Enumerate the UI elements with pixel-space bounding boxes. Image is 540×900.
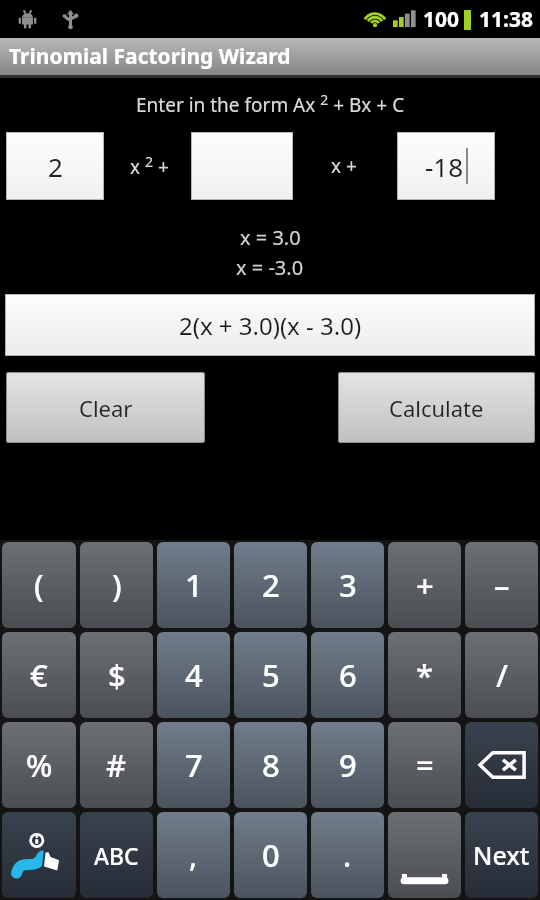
staticText: = — [416, 744, 434, 786]
staticText: 2 — [262, 564, 280, 606]
staticText: 7 — [185, 744, 203, 786]
staticText: / — [496, 654, 508, 696]
staticText: % — [26, 744, 53, 786]
button[interactable]: $ — [80, 632, 153, 718]
staticText: ABC — [94, 840, 139, 871]
button[interactable]: 6 — [311, 632, 384, 718]
staticText: $ — [108, 654, 126, 696]
button[interactable]: Space — [388, 812, 461, 898]
staticText: Trinomial Factoring Wizard — [9, 42, 291, 71]
staticText: x + — [331, 153, 357, 179]
staticText: ( — [34, 564, 44, 606]
staticText: + — [416, 564, 434, 606]
button[interactable]: . — [311, 812, 384, 898]
button[interactable]: Swipe input help — [2, 812, 76, 898]
staticText: . — [343, 835, 352, 876]
staticText: 4 — [185, 654, 203, 696]
button[interactable]: 5 — [234, 632, 307, 718]
button[interactable]: Next — [465, 812, 538, 898]
staticText: 5 — [262, 654, 280, 696]
staticText: Enter in the form Ax 2 + Bx + C — [136, 90, 405, 118]
staticText: 2(x + 3.0)(x - 3.0) — [179, 309, 362, 342]
button[interactable]: € — [2, 632, 76, 718]
button[interactable]: ABC — [80, 812, 153, 898]
staticText: € — [30, 654, 48, 696]
staticText: x = -3.0 — [236, 254, 304, 281]
staticText: 0 — [262, 834, 280, 876]
staticText: 11:38 — [479, 5, 533, 34]
button[interactable]: , — [157, 812, 230, 898]
button[interactable]: Delete — [465, 722, 538, 808]
staticText: 3 — [339, 564, 357, 606]
staticText: Next — [473, 838, 530, 872]
staticText: 8 — [262, 744, 280, 786]
button[interactable]: ) — [80, 542, 153, 628]
button[interactable]: % — [2, 722, 76, 808]
button[interactable]: ( — [2, 542, 76, 628]
staticText: 1 — [185, 564, 203, 606]
staticText: * — [416, 654, 433, 696]
button[interactable]: = — [388, 722, 461, 808]
button[interactable]: / — [465, 632, 538, 718]
button[interactable]: 2 — [234, 542, 307, 628]
staticText: x = 3.0 — [240, 224, 301, 251]
staticText: 9 — [339, 744, 357, 786]
button[interactable]: Clear — [6, 372, 205, 443]
staticText: x 2 + — [130, 152, 169, 180]
button[interactable]: 2 — [6, 132, 104, 200]
staticText: Clear — [79, 393, 133, 423]
button[interactable]: 8 — [234, 722, 307, 808]
button[interactable]: 3 — [311, 542, 384, 628]
button[interactable]: 7 — [157, 722, 230, 808]
staticText: 100 — [423, 5, 460, 34]
staticText: -18 — [425, 149, 464, 184]
staticText: # — [106, 744, 127, 786]
button[interactable]: + — [388, 542, 461, 628]
button[interactable]: 4 — [157, 632, 230, 718]
button[interactable] — [191, 132, 293, 200]
button[interactable]: -18 — [397, 132, 495, 200]
button[interactable]: # — [80, 722, 153, 808]
staticText: Calculate — [389, 393, 484, 423]
button[interactable]: * — [388, 632, 461, 718]
staticText: – — [494, 564, 510, 606]
button[interactable]: 0 — [234, 812, 307, 898]
button[interactable]: – — [465, 542, 538, 628]
button[interactable]: 1 — [157, 542, 230, 628]
staticText: ) — [112, 564, 122, 606]
staticText: 2 — [48, 149, 63, 184]
staticText: , — [189, 835, 198, 876]
button[interactable]: 9 — [311, 722, 384, 808]
staticText: 6 — [339, 654, 357, 696]
button[interactable]: Calculate — [338, 372, 535, 443]
